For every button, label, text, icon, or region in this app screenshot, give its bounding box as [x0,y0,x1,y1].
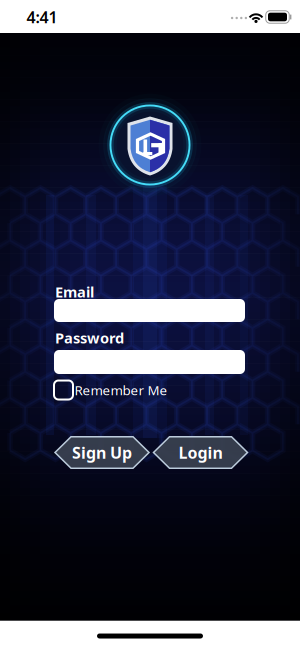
button[interactable] [54,350,245,374]
button[interactable] [54,299,245,322]
staticText: Remember Me [74,381,167,399]
staticText: Login [178,442,222,463]
staticText: Sign Up [72,442,132,463]
staticText: Email [55,282,94,301]
staticText: Password [55,328,124,347]
button[interactable]: Remember Me [54,380,167,399]
staticText: 4:41 [26,6,57,28]
button[interactable]: Login [153,437,247,468]
button[interactable]: Sign Up [55,437,149,468]
